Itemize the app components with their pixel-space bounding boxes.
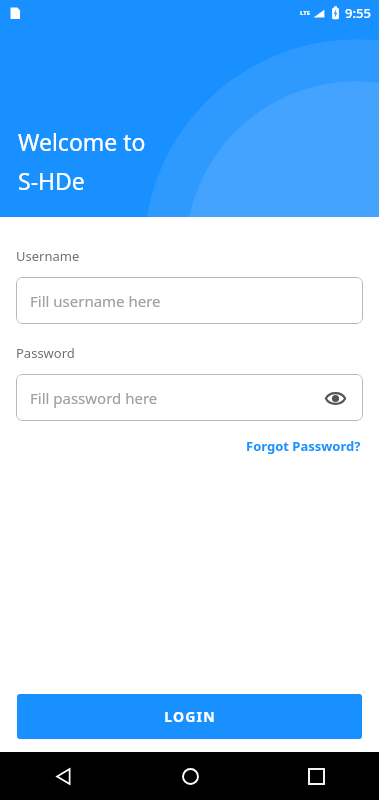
button[interactable]: Fill password here [16, 374, 363, 421]
staticText: Welcome to [18, 126, 146, 157]
staticText: LTE [300, 9, 311, 17]
staticText: LOGIN [164, 707, 216, 726]
staticText: Fill password here [30, 388, 158, 408]
button[interactable]: Home [127, 752, 253, 800]
button[interactable]: Fill username here [16, 277, 363, 324]
staticText: Username [16, 247, 80, 265]
button[interactable]: LOGIN [17, 694, 362, 739]
staticText: Forgot Password? [246, 437, 361, 455]
button[interactable]: Recent apps [253, 752, 379, 800]
staticText: 9:55 [345, 4, 371, 22]
staticText: Fill username here [30, 291, 161, 311]
button[interactable]: Forgot Password? [244, 435, 363, 457]
button[interactable]: Show password [321, 384, 349, 412]
button[interactable]: Back [0, 752, 127, 800]
staticText: Password [16, 344, 75, 362]
staticText: S-HDe [18, 165, 85, 196]
